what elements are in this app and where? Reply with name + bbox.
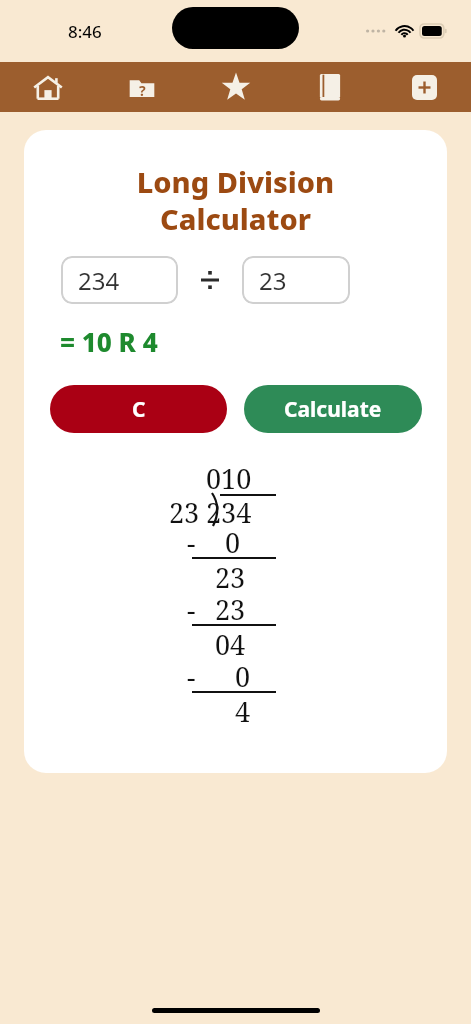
button[interactable]: Bookmarks — [283, 62, 377, 112]
button[interactable]: Add — [377, 62, 471, 112]
staticText: 4 — [235, 693, 251, 730]
staticText: 010 — [206, 460, 252, 497]
staticText: 0 — [235, 658, 251, 695]
staticText: 04 — [215, 626, 246, 663]
staticText: 8:46 — [68, 20, 102, 43]
staticText: 23 — [169, 494, 200, 531]
staticText: 23 — [215, 559, 246, 596]
staticText: - — [187, 591, 196, 628]
staticText: = 10 R 4 — [60, 324, 158, 359]
button[interactable]: Home — [0, 62, 95, 112]
staticText: 0 — [225, 524, 241, 561]
staticText: - — [187, 658, 196, 695]
staticText: C — [132, 395, 146, 424]
button[interactable]: 23 — [242, 256, 350, 304]
button[interactable]: C — [50, 385, 227, 433]
staticText: 234 — [206, 494, 252, 531]
staticText: Calculate — [284, 395, 382, 424]
staticText: ? — [139, 81, 146, 100]
staticText: 23 — [259, 264, 287, 297]
button[interactable]: 234 — [61, 256, 178, 304]
button[interactable]: Favorites — [189, 62, 283, 112]
button[interactable]: Help — [95, 62, 189, 112]
staticText: Long Division Calculator — [24, 162, 447, 239]
staticText: - — [187, 524, 196, 561]
staticText: 234 — [78, 264, 120, 297]
button[interactable]: Calculate — [244, 385, 422, 433]
staticText: 23 — [215, 591, 246, 628]
